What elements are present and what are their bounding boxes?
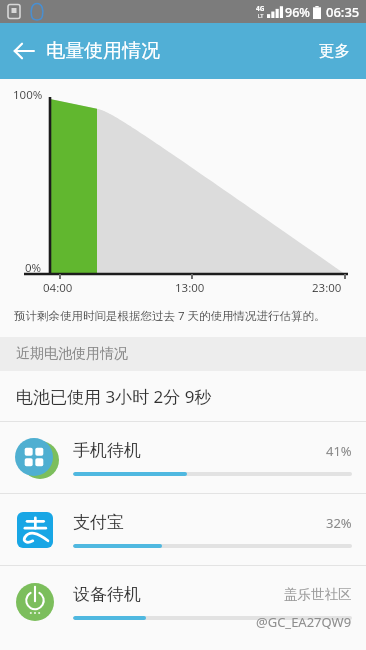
staticText: 电量使用情况 <box>46 39 160 63</box>
staticText: 电池已使用 3小时 2分 9秒 <box>16 385 212 408</box>
button[interactable]: 设备待机 <box>0 566 366 637</box>
staticText: @GC_EA27QW9 <box>256 613 352 631</box>
staticText: 23:00 <box>312 280 342 296</box>
staticText: 支付宝 <box>73 512 326 533</box>
staticText: 41% <box>326 442 352 460</box>
staticText: 0% <box>25 260 42 276</box>
staticText: 预计剩余使用时间是根据您过去 7 天的使用情况进行估算的。 <box>14 308 326 324</box>
staticText: 04:00 <box>43 280 73 296</box>
staticText: 手机待机 <box>73 440 326 461</box>
button[interactable]: 更多 <box>303 27 366 75</box>
staticText: 近期电池使用情况 <box>16 345 128 363</box>
button[interactable]: 支付宝 <box>0 494 366 565</box>
staticText: 设备待机 <box>73 584 284 605</box>
staticText: 96% <box>285 4 310 21</box>
button[interactable]: Back <box>0 27 48 75</box>
staticText: 06:35 <box>326 3 360 21</box>
staticText: 13:00 <box>175 280 205 296</box>
staticText: 100% <box>13 87 43 103</box>
staticText: 盖乐世社区 <box>284 586 352 603</box>
staticText: 32% <box>326 514 352 532</box>
button[interactable]: 手机待机 <box>0 422 366 493</box>
staticText: 更多 <box>319 41 350 61</box>
staticText: 4G <box>256 4 265 13</box>
staticText: LT <box>258 13 264 20</box>
